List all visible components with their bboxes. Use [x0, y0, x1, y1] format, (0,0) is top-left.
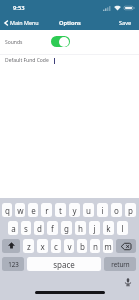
- button[interactable]: Main Menu: [0, 19, 43, 26]
- button[interactable]: t: [55, 203, 66, 217]
- staticText: space: [53, 259, 75, 270]
- button[interactable]: d: [34, 221, 44, 235]
- staticText: g: [64, 223, 69, 234]
- button[interactable]: q: [2, 203, 12, 217]
- staticText: i: [101, 205, 104, 216]
- staticText: q: [5, 205, 10, 216]
- button[interactable]: j: [89, 221, 100, 235]
- staticText: l: [121, 223, 124, 234]
- button[interactable]: Shift: [2, 239, 20, 253]
- staticText: k: [106, 223, 111, 234]
- button[interactable]: space: [27, 257, 101, 271]
- button[interactable]: b: [77, 239, 87, 253]
- button[interactable]: n: [90, 239, 100, 253]
- staticText: r: [45, 205, 49, 216]
- button[interactable]: y: [69, 203, 80, 217]
- button[interactable]: m: [103, 239, 113, 253]
- button[interactable]: v: [64, 239, 74, 253]
- staticText: j: [93, 223, 96, 234]
- button[interactable]: s: [21, 221, 31, 235]
- button[interactable]: g: [61, 221, 72, 235]
- button[interactable]: k: [103, 221, 114, 235]
- staticText: m: [104, 241, 112, 252]
- staticText: w: [17, 205, 24, 216]
- staticText: 123: [8, 260, 19, 268]
- staticText: x: [40, 241, 45, 252]
- staticText: f: [51, 223, 54, 234]
- staticText: Sounds: [5, 39, 23, 46]
- staticText: 9:53: [13, 4, 25, 12]
- button[interactable]: c: [51, 239, 61, 253]
- staticText: d: [37, 223, 42, 234]
- staticText: v: [67, 241, 72, 252]
- button[interactable]: w: [15, 203, 25, 217]
- staticText: c: [54, 241, 58, 252]
- button[interactable]: f: [47, 221, 58, 235]
- button[interactable]: Dictation: [124, 278, 132, 286]
- staticText: s: [24, 223, 28, 234]
- staticText: Main Menu: [10, 19, 39, 26]
- staticText: u: [86, 205, 91, 216]
- button[interactable]: Save: [119, 19, 139, 27]
- staticText: t: [59, 205, 62, 216]
- button[interactable]: Sounds toggle: [51, 36, 70, 47]
- button[interactable]: p: [125, 203, 136, 217]
- staticText: e: [31, 205, 36, 216]
- staticText: z: [27, 241, 31, 252]
- staticText: Default Fund Code: [5, 57, 49, 64]
- staticText: h: [78, 223, 83, 234]
- button[interactable]: h: [75, 221, 86, 235]
- button[interactable]: return: [104, 257, 136, 271]
- button[interactable]: 123: [2, 257, 24, 271]
- button[interactable]: z: [23, 239, 34, 253]
- button[interactable]: a: [8, 221, 18, 235]
- staticText: return: [111, 260, 130, 268]
- button[interactable]: Sounds: [0, 30, 139, 50]
- staticText: o: [114, 205, 119, 216]
- button[interactable]: e: [28, 203, 38, 217]
- button[interactable]: l: [117, 221, 128, 235]
- button[interactable]: i: [97, 203, 108, 217]
- button[interactable]: r: [41, 203, 52, 217]
- staticText: Options: [59, 19, 81, 27]
- button[interactable]: u: [83, 203, 94, 217]
- button[interactable]: Default Fund Code: [0, 51, 139, 70]
- button[interactable]: x: [37, 239, 48, 253]
- staticText: b: [80, 241, 85, 252]
- button[interactable]: o: [111, 203, 122, 217]
- staticText: n: [93, 241, 98, 252]
- staticText: a: [11, 223, 16, 234]
- button[interactable]: Backspace: [116, 239, 136, 253]
- staticText: y: [72, 205, 77, 216]
- staticText: p: [128, 205, 133, 216]
